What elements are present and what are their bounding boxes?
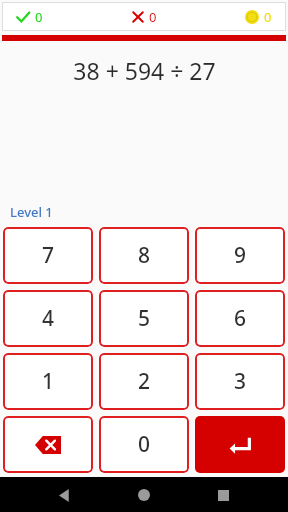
button[interactable]: 1 — [3, 353, 93, 410]
staticText: 3 — [234, 367, 247, 396]
button[interactable]: 5 — [99, 290, 189, 347]
staticText: Level 1 — [10, 203, 53, 221]
staticText: 4 — [42, 304, 55, 333]
button[interactable]: 3 — [195, 353, 285, 410]
button[interactable]: 7 — [3, 227, 93, 284]
staticText: 1 — [42, 367, 55, 396]
button[interactable]: 0 — [99, 416, 189, 473]
staticText: 2 — [138, 367, 151, 396]
staticText: 5 — [138, 304, 151, 333]
button[interactable]: Back — [48, 478, 82, 512]
button[interactable]: 6 — [195, 290, 285, 347]
staticText: 8 — [138, 241, 151, 270]
button[interactable]: Backspace — [3, 416, 93, 473]
staticText: 38 + 594 ÷ 27 — [73, 55, 216, 86]
button[interactable]: Home — [127, 478, 161, 512]
staticText: 0 — [264, 8, 272, 26]
button[interactable]: 8 — [99, 227, 189, 284]
button[interactable]: 9 — [195, 227, 285, 284]
button[interactable]: 4 — [3, 290, 93, 347]
button[interactable]: 2 — [99, 353, 189, 410]
button[interactable]: Enter — [195, 416, 285, 473]
staticText: 0 — [149, 8, 157, 26]
button[interactable]: Recents — [206, 478, 240, 512]
staticText: 6 — [234, 304, 247, 333]
staticText: 7 — [42, 241, 55, 270]
staticText: 0 — [138, 430, 151, 459]
staticText: 9 — [234, 241, 247, 270]
staticText: 0 — [35, 8, 43, 26]
